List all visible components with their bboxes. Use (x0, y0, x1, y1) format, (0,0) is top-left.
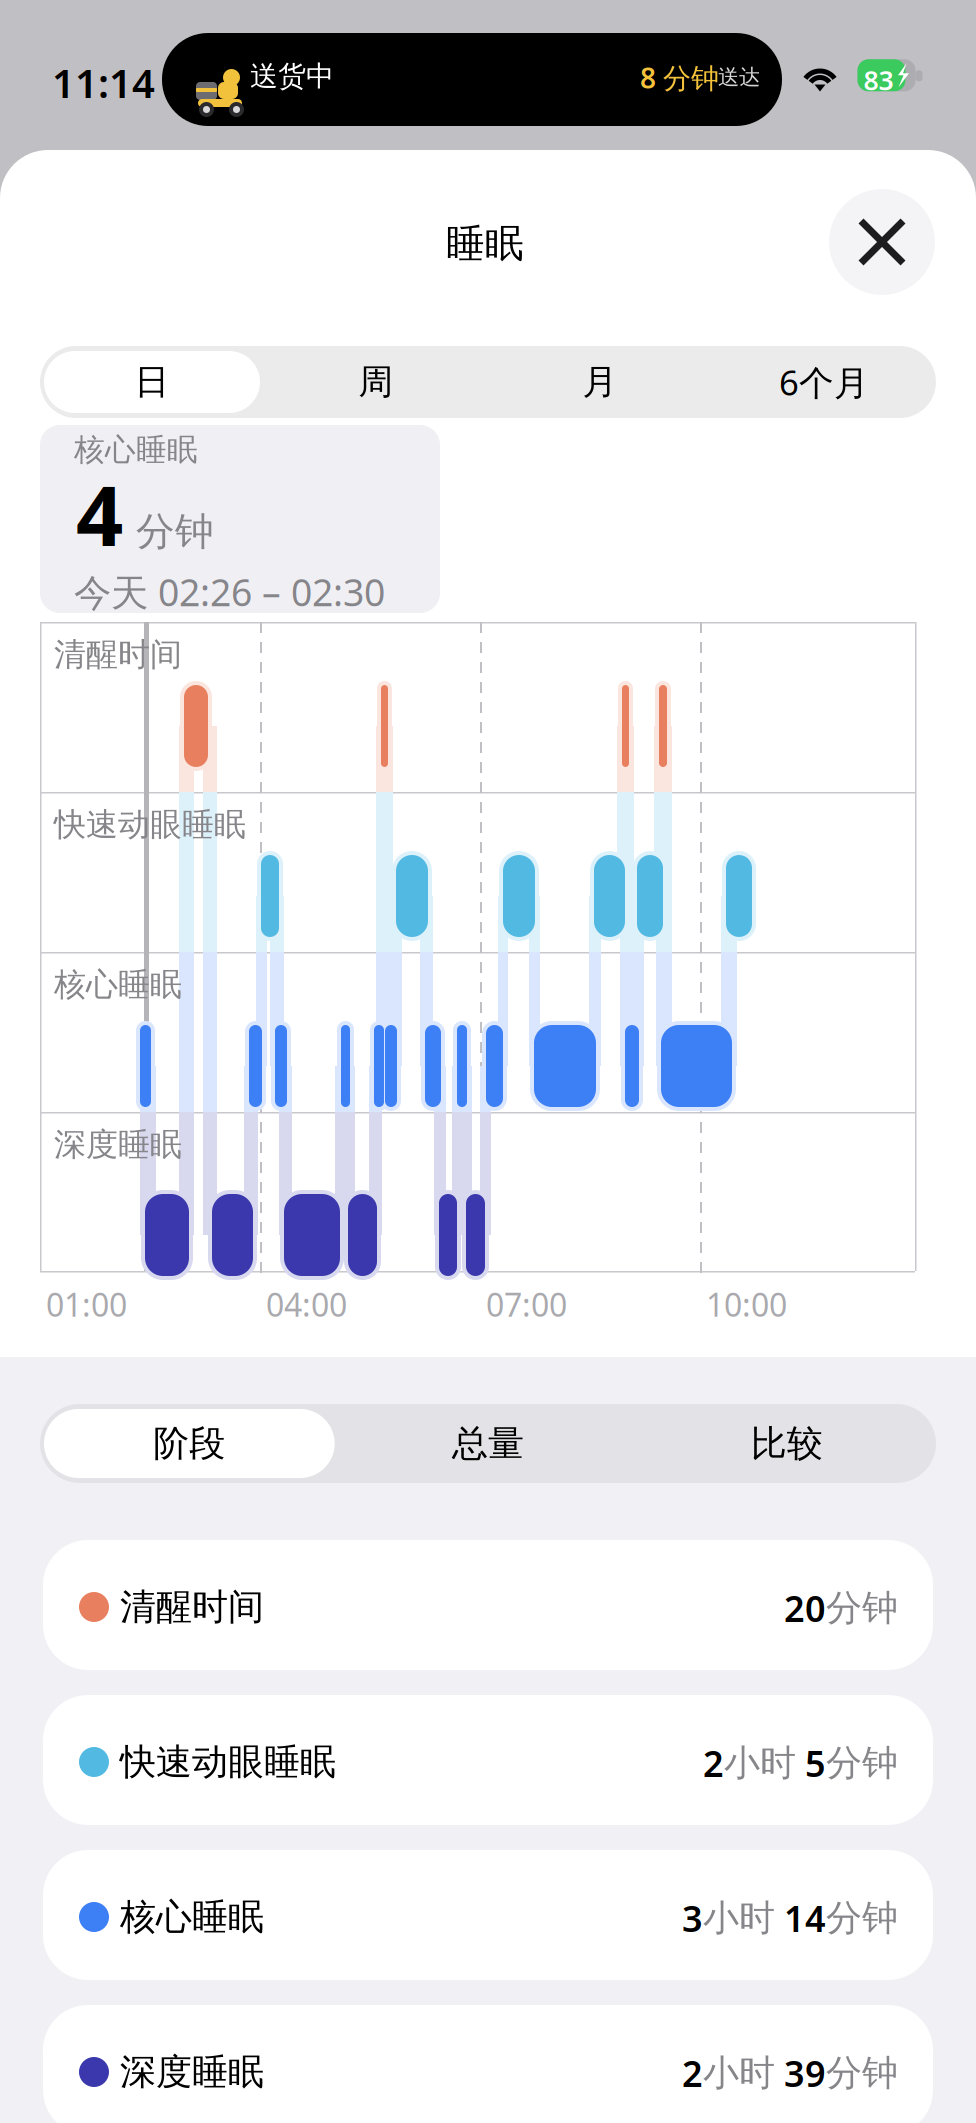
staticText: 分钟 (136, 508, 214, 555)
button[interactable]: 日 (40, 346, 264, 418)
staticText: 83 (863, 62, 893, 98)
button[interactable]: 比较 (637, 1404, 936, 1483)
staticText: 3 (682, 1894, 703, 1942)
staticText: 分钟 (826, 1741, 898, 1785)
staticText: 总量 (452, 1421, 524, 1466)
staticText: 清醒时间 (120, 1585, 264, 1629)
staticText: 核心睡眠 (120, 1895, 264, 1939)
button[interactable]: 周 (264, 346, 488, 418)
staticText: 送货中 (250, 59, 334, 93)
staticText: 小时 (724, 1741, 796, 1785)
staticText: 04:00 (266, 1283, 347, 1325)
staticText: 14 (775, 1894, 826, 1942)
staticText: 送达 (718, 64, 760, 90)
button[interactable]: 送货中，8 分钟送达 (162, 33, 782, 126)
staticText: 今天 02:26 – 02:30 (74, 567, 385, 617)
staticText: 快速动眼睡眠 (54, 805, 246, 844)
staticText: 日 (134, 361, 169, 403)
staticText: 快速动眼睡眠 (120, 1740, 336, 1784)
staticText: 分钟 (826, 1896, 898, 1940)
button[interactable]: 总量 (339, 1404, 637, 1483)
staticText: 20 (784, 1584, 826, 1632)
staticText: 11:14 (52, 56, 155, 109)
staticText: 月 (582, 361, 617, 403)
staticText: 核心睡眠 (54, 965, 182, 1004)
staticText: 小时 (703, 1896, 775, 1940)
button[interactable]: 核心睡眠 (43, 1853, 933, 1983)
staticText: 8 分钟 (640, 59, 719, 96)
button[interactable]: 清醒时间 (43, 1543, 933, 1673)
button[interactable]: 阶段 (40, 1404, 339, 1483)
button[interactable]: 快速动眼睡眠 (43, 1698, 933, 1828)
staticText: 核心睡眠 (74, 431, 198, 469)
staticText: 比较 (751, 1421, 823, 1466)
staticText: 10:00 (706, 1283, 787, 1325)
staticText: 周 (358, 361, 393, 403)
staticText: 2 (703, 1739, 724, 1787)
staticText: 01:00 (46, 1283, 127, 1325)
staticText: 2 (682, 2049, 703, 2097)
staticText: 阶段 (153, 1421, 225, 1466)
button[interactable]: 关闭 (829, 189, 935, 295)
button[interactable]: 月 (488, 346, 712, 418)
staticText: 07:00 (486, 1283, 567, 1325)
staticText: 39 (775, 2049, 826, 2097)
staticText: 清醒时间 (54, 635, 182, 674)
staticText: 深度睡眠 (120, 2050, 264, 2094)
staticText: 睡眠 (446, 220, 524, 267)
staticText: 5 (796, 1739, 826, 1787)
staticText: 4 (76, 459, 123, 569)
staticText: 小时 (703, 2051, 775, 2095)
staticText: 分钟 (826, 2051, 898, 2095)
staticText: 分钟 (826, 1586, 898, 1630)
staticText: 深度睡眠 (54, 1125, 182, 1164)
button[interactable]: 深度睡眠 (43, 2008, 933, 2123)
button[interactable]: 6个月 (712, 346, 936, 418)
staticText: 6个月 (779, 359, 869, 405)
